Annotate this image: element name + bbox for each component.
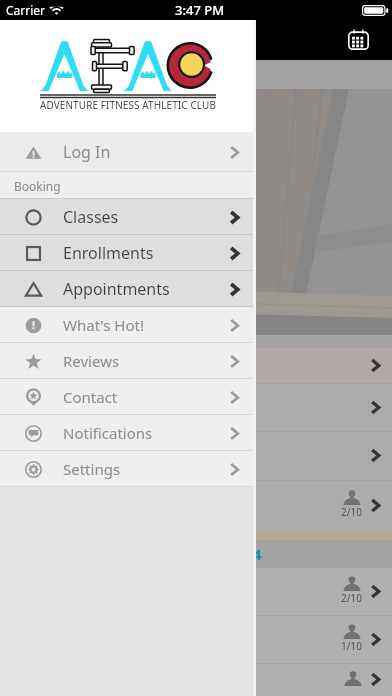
staticText: Reviews (63, 351, 120, 371)
staticText: Classes (63, 206, 119, 228)
button[interactable]: Calendar (342, 23, 374, 55)
staticText: 2/10 (341, 591, 362, 605)
button[interactable]: 2/10 (0, 480, 392, 531)
staticText: Carrier (6, 2, 46, 18)
button[interactable]: What's Hot! (0, 307, 256, 343)
button[interactable]: Enrollments (0, 235, 256, 271)
staticText: Booking (14, 178, 61, 194)
staticText: Log In (63, 141, 111, 163)
button[interactable] (0, 347, 392, 383)
button[interactable] (0, 431, 392, 480)
staticText: ADVENTURE FITNESS ATHLETIC CLUB (40, 98, 217, 113)
staticText: Appointments (63, 278, 170, 300)
button[interactable]: 1/10 (0, 615, 392, 663)
staticText: 2/10 (341, 505, 362, 519)
button[interactable]: Settings (0, 451, 256, 487)
button[interactable]: Notifications (0, 415, 256, 451)
button[interactable] (0, 663, 392, 696)
staticText: Settings (63, 459, 121, 479)
staticText: What's Hot! (63, 315, 145, 335)
button[interactable] (0, 335, 392, 347)
button[interactable]: Contact (0, 379, 256, 415)
staticText: Notifications (63, 423, 153, 443)
staticText: Contact (63, 387, 118, 407)
button[interactable]: Log In (0, 132, 256, 172)
button[interactable]: Classes (0, 199, 256, 235)
button[interactable] (0, 383, 392, 431)
staticText: 1/10 (341, 639, 362, 653)
staticText: 4 (253, 544, 262, 564)
button[interactable]: 2/10 (0, 567, 392, 615)
button[interactable]: Appointments (0, 271, 256, 307)
staticText: Enrollments (63, 242, 154, 264)
staticText: 3:47 PM (175, 1, 225, 19)
button[interactable]: Reviews (0, 343, 256, 379)
